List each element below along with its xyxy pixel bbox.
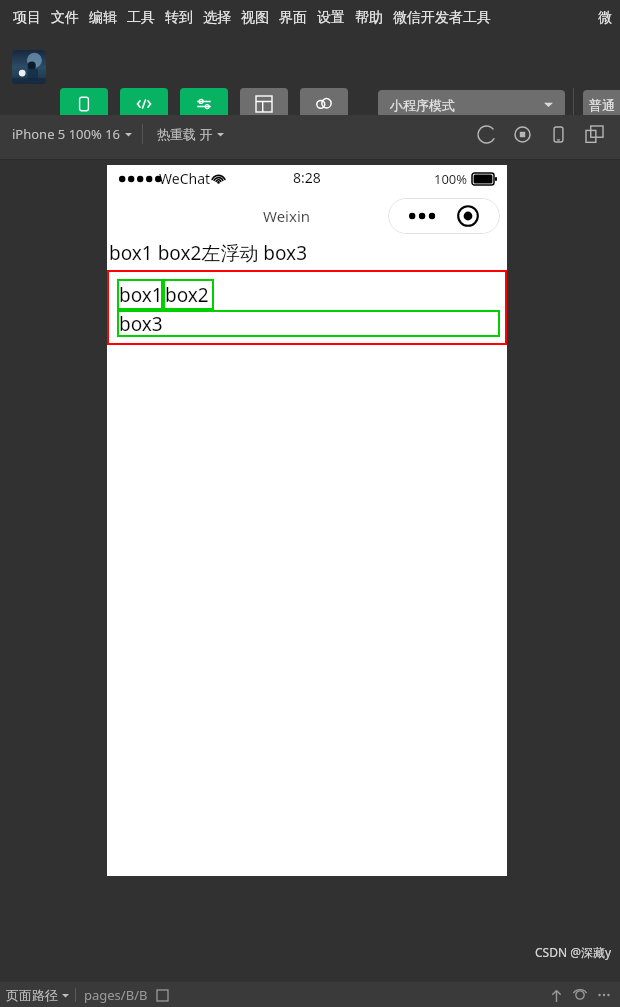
staticText: 帮助 [355,9,383,27]
button[interactable]: 项目 [8,5,46,31]
staticText: 热重载 开 [157,125,213,143]
button[interactable]: 编辑器 [120,88,168,137]
button[interactable]: iPhone 5 100% 16 [0,121,142,147]
staticText: iPhone 5 100% 16 [12,125,121,143]
staticText: 视图 [241,9,269,27]
button[interactable]: 选择 [198,5,236,31]
staticText: 微 [598,9,612,27]
staticText: 微信开发者工具 [393,9,491,27]
staticText: box1 box2左浮动 box3 [109,240,308,266]
button[interactable]: 编辑 [84,5,122,31]
button[interactable]: 热重载 开 [143,121,238,147]
staticText: 转到 [165,9,193,27]
staticText: 项目 [13,9,41,27]
button[interactable]: 上传 [544,983,568,1007]
staticText: box2 [165,282,209,308]
staticText: CSDN @深藏y [535,944,612,960]
button[interactable]: 微信开发者工具 [388,5,496,31]
button[interactable]: 停止 [504,116,540,152]
button[interactable]: 界面 [274,5,312,31]
button[interactable]: 复制路径 [154,987,170,1003]
staticText: WeChat [159,169,211,188]
staticText: box1 [119,282,163,308]
staticText: 选择 [203,9,231,27]
button[interactable]: 设置 [312,5,350,31]
button[interactable]: box1 [117,279,163,310]
button[interactable]: 可视化 [240,88,288,137]
staticText: 普通 [589,97,615,113]
button[interactable]: 云开发 [300,88,348,137]
button[interactable]: 预览 [568,983,592,1007]
staticText: 调试器 [186,122,222,137]
button[interactable]: 普通 [583,90,620,119]
button[interactable]: 刷新 [468,116,504,152]
staticText: 小程序模式 [390,97,455,113]
button[interactable]: box3 [117,310,500,337]
button[interactable]: 小程序模式 [378,90,565,119]
staticText: Weixin [263,206,311,226]
staticText: 8:28 [293,168,321,187]
staticText: box3 [119,311,163,337]
button[interactable]: 调试器 [180,88,228,137]
staticText: 页面路径 [6,987,58,1003]
button[interactable]: 页面路径 [0,987,75,1003]
button[interactable]: 文件 [46,5,84,31]
button[interactable]: 工具 [122,5,160,31]
button[interactable]: 转到 [160,5,198,31]
button[interactable]: 帮助 [350,5,388,31]
staticText: 界面 [279,9,307,27]
staticText: 设置 [317,9,345,27]
button[interactable]: 用户头像 [12,50,46,84]
button[interactable]: 视图 [236,5,274,31]
button[interactable]: 真机预览 [540,116,576,152]
button[interactable]: 更多 [592,983,616,1007]
staticText: 模拟器 [66,122,102,137]
staticText: 编辑 [89,9,117,27]
staticText: 文件 [51,9,79,27]
button[interactable]: 更多 [592,5,618,31]
button[interactable]: 菜单胶囊 [388,198,500,234]
staticText: 编辑器 [126,122,162,137]
staticText: 工具 [127,9,155,27]
button[interactable]: 模拟器 [60,88,108,137]
button[interactable]: box2 [163,279,214,310]
staticText: 100% [434,170,468,188]
button[interactable]: 多窗口 [576,116,612,152]
staticText: pages/B/B [84,986,148,1004]
